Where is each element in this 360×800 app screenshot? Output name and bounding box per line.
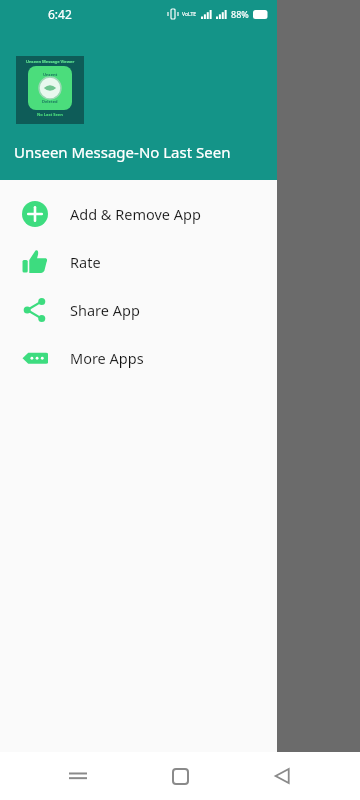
staticText: Unseen Message-No Last Seen <box>14 142 231 162</box>
button[interactable]: Share App <box>0 286 277 334</box>
staticText: 6:42 <box>48 6 72 22</box>
button[interactable]: Home <box>156 752 204 800</box>
staticText: Unseen Message Viewer <box>16 60 211 83</box>
button[interactable]: Back <box>258 752 306 800</box>
staticText: Add & Remove App <box>70 204 201 224</box>
staticText: No Last Seen <box>37 112 63 117</box>
button[interactable]: Recents <box>54 752 102 800</box>
staticText: Deleted <box>42 99 58 104</box>
staticText: Unsent <box>43 72 58 77</box>
staticText: Share App <box>70 300 140 320</box>
button[interactable]: Add & Remove App <box>0 190 277 238</box>
button[interactable]: More Apps <box>0 334 277 382</box>
staticText: More Apps <box>70 348 144 368</box>
button[interactable]: Rate <box>0 238 277 286</box>
staticText: Unseen Message Viewer <box>26 59 75 64</box>
staticText: VoLTE <box>182 11 197 18</box>
staticText: 88% <box>231 8 249 20</box>
staticText: Rate <box>70 252 101 272</box>
